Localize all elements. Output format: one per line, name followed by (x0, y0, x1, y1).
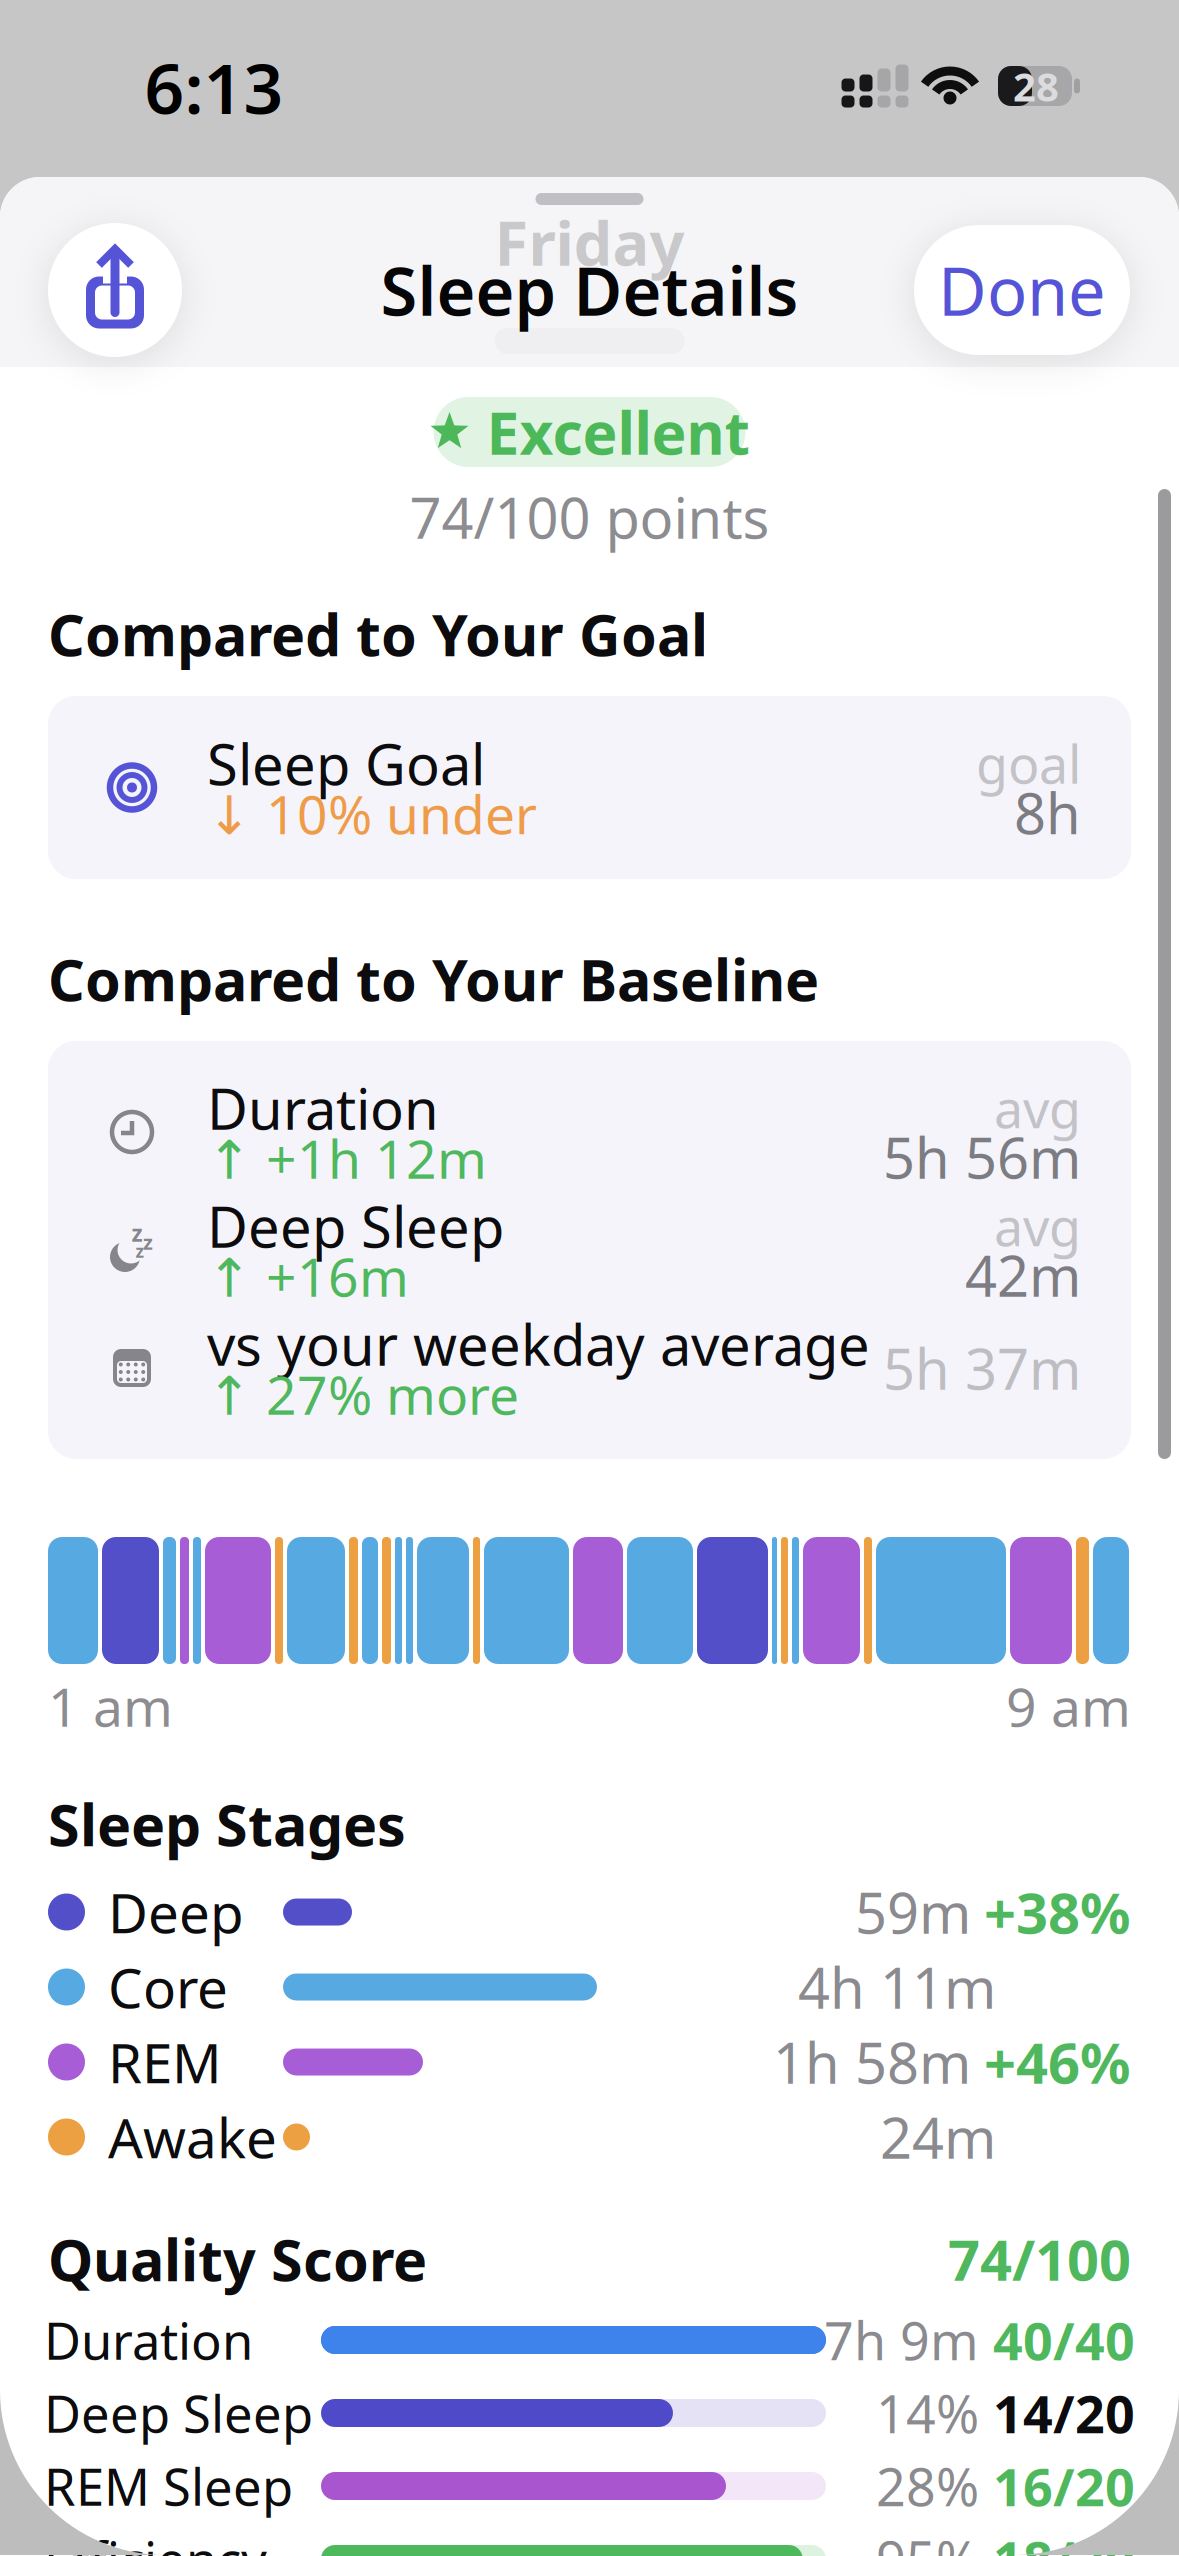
staticText: avg (994, 1073, 1081, 1143)
staticText: Sleep Goal (207, 726, 485, 801)
staticText: ↑ +16m (207, 1241, 409, 1311)
staticText: Deep (108, 1876, 244, 1948)
staticText: 14% (876, 2378, 979, 2448)
staticText: z (143, 1229, 153, 1255)
staticText: Duration (207, 1071, 439, 1145)
staticText: 9 am (1006, 1671, 1131, 1741)
staticText: Sleep Stages (48, 1786, 406, 1862)
staticText: Done (938, 246, 1106, 334)
staticText: Deep Sleep (44, 2379, 313, 2447)
button[interactable]: Done (914, 225, 1130, 355)
staticText: Sleep Details (380, 246, 798, 334)
staticText: z (135, 1239, 144, 1262)
staticText: 74/100 points (409, 480, 769, 554)
staticText: 1 am (48, 1671, 173, 1741)
staticText: avg (994, 1191, 1081, 1261)
staticText: ↓ 10% under (207, 778, 537, 849)
staticText: 74/100 (948, 2222, 1131, 2296)
staticText: Core (108, 1951, 228, 2023)
staticText: vs your weekday average (207, 1307, 870, 1381)
staticText: Quality Score (48, 2221, 427, 2297)
staticText: 14/20 (993, 2378, 1135, 2448)
staticText: Excellent (486, 393, 749, 471)
staticText: ↑ 27% more (207, 1359, 519, 1429)
staticText: Deep Sleep (207, 1189, 504, 1263)
staticText: z (131, 1218, 142, 1248)
staticText: 40/40 (993, 2305, 1135, 2375)
button[interactable] (48, 223, 182, 357)
staticText: 6:13 (144, 41, 283, 133)
staticText: Awake (108, 2101, 277, 2173)
staticText: REM Sleep (44, 2452, 293, 2520)
staticText: Friday (494, 201, 684, 283)
staticText: 16/20 (993, 2451, 1135, 2521)
staticText: Compared to Your Goal (48, 596, 708, 672)
staticText: 28 (1013, 59, 1059, 112)
staticText: 5h 56m (883, 1120, 1081, 1194)
staticText: 4h 11m (798, 1950, 996, 2024)
staticText: Efficiency (44, 2525, 267, 2556)
staticText: 24m (880, 2100, 996, 2174)
staticText: 1h 58m (773, 2025, 971, 2099)
staticText: Compared to Your Baseline (48, 941, 819, 1017)
staticText: REM (108, 2026, 222, 2098)
staticText: 59m (855, 1875, 971, 1949)
staticText: +38% (984, 1875, 1131, 1949)
staticText: +46% (984, 2025, 1131, 2099)
staticText: Duration (44, 2306, 253, 2374)
staticText: 28% (876, 2451, 979, 2521)
staticText: 18/20 (993, 2524, 1135, 2556)
staticText: 7h 9m (824, 2305, 979, 2375)
staticText: ↑ +1h 12m (207, 1123, 487, 1193)
staticText: 5h 37m (883, 1331, 1081, 1405)
staticText: 8h (1014, 775, 1081, 850)
staticText: 42m (965, 1238, 1081, 1312)
staticText: goal (976, 729, 1081, 798)
staticText: 95% (876, 2524, 979, 2556)
